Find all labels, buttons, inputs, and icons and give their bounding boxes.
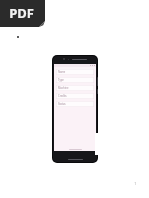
button[interactable]: Type [56,77,94,83]
button[interactable]: Name [56,69,94,75]
staticText: 1 [134,181,137,186]
button[interactable]: Status [56,101,94,107]
staticText: Type [58,78,64,82]
button[interactable]: PDF document [0,0,45,27]
button[interactable]: Machine [56,85,94,91]
staticText: PDF [9,4,34,22]
button[interactable]: Power [97,89,98,94]
staticText: Machine [58,86,69,90]
staticText: Credits [58,94,67,98]
button[interactable]: Volume [97,77,98,86]
button[interactable]: Credits [56,93,94,99]
staticText: Name [58,70,66,74]
staticText: Status [58,102,66,106]
